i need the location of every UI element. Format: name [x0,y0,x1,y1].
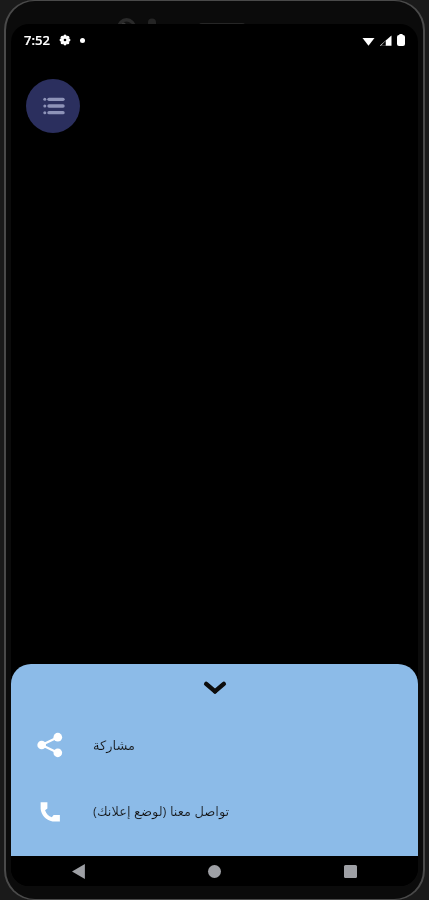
button[interactable]: مشاركة [11,724,418,766]
staticText: 7:52 [24,31,50,49]
button[interactable]: تواصل معنا (لوضع إعلانك) [11,790,418,832]
staticText: تواصل معنا (لوضع إعلانك) [93,802,230,820]
button[interactable]: Recent apps [282,856,418,886]
button[interactable]: Collapse [11,664,418,710]
button[interactable]: Menu [26,79,80,133]
button[interactable]: Back [11,856,146,886]
button[interactable]: Home [146,856,282,886]
staticText: مشاركة [93,738,135,753]
